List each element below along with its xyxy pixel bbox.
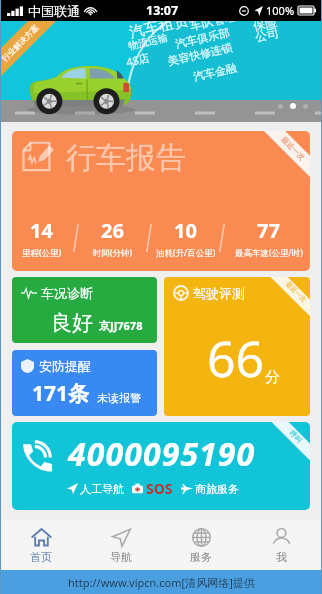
staticText: 油耗(升/百公里) — [156, 247, 216, 259]
staticText: 汽车俱乐部 — [174, 25, 231, 51]
button[interactable]: 二手车 — [1, 21, 321, 122]
staticText: 分 — [265, 368, 280, 387]
staticText: 汽车金融 — [192, 60, 238, 84]
staticText: 我 — [276, 550, 287, 564]
staticText: 100% — [266, 3, 295, 18]
staticText: 未读报警 — [97, 391, 141, 405]
button[interactable]: 呼叫 — [12, 422, 310, 510]
staticText: 服务 — [190, 550, 212, 564]
button[interactable]: 最近一次 — [164, 277, 310, 416]
staticText: 导航 — [110, 550, 132, 564]
staticText: 保险 — [252, 21, 278, 33]
staticText: 车况诊断 — [41, 285, 93, 301]
staticText: 良好 — [51, 310, 93, 336]
staticText: 171条 — [32, 379, 90, 408]
staticText: 26 — [101, 217, 124, 244]
staticText: 驾驶评测 — [193, 285, 245, 301]
staticText: 安防提醒 — [39, 358, 91, 374]
staticText: 呼叫 — [288, 428, 304, 445]
staticText: 10 — [174, 217, 197, 244]
staticText: 商旅服务 — [195, 482, 239, 496]
button[interactable]: 我 — [241, 520, 321, 570]
staticText: 最高车速(公里/时) — [235, 247, 303, 259]
button[interactable]: 首页 — [1, 520, 81, 570]
staticText: 汽车租赁 — [128, 21, 190, 42]
staticText: 13:07 — [146, 2, 179, 19]
staticText: 京JJ7678 — [99, 318, 143, 333]
staticText: 里程(公里) — [22, 247, 62, 259]
button[interactable]: 安防提醒 — [12, 350, 157, 416]
staticText: 物流运输 — [127, 31, 169, 52]
staticText: http://www.vipcn.com[清风网络]提供 — [68, 575, 255, 590]
staticText: 中国联通 — [28, 3, 80, 19]
staticText: 美容快修连锁 — [166, 40, 234, 68]
staticText: 最近一次 — [279, 135, 307, 162]
staticText: 车队管理 — [188, 21, 238, 33]
staticText: 4000095190 — [68, 432, 256, 476]
button[interactable]: 导航 — [81, 520, 161, 570]
staticText: 最近一次 — [284, 280, 308, 304]
button[interactable]: 最近一次 — [12, 131, 310, 271]
staticText: 行业解决方案 — [1, 22, 40, 63]
staticText: 4S店 — [125, 49, 151, 69]
button[interactable]: 车况诊断 — [12, 277, 157, 343]
staticText: 二手车 — [136, 21, 165, 23]
staticText: SOS — [146, 479, 173, 498]
staticText: 66 — [207, 324, 265, 392]
staticText: 行车报告 — [66, 139, 186, 177]
staticText: 首页 — [30, 550, 52, 564]
staticText: 时间(分钟) — [93, 247, 133, 259]
staticText: 14 — [30, 217, 53, 244]
staticText: 77 — [257, 217, 280, 244]
staticText: 人工导航 — [80, 482, 124, 496]
button[interactable]: 服务 — [161, 520, 241, 570]
staticText: 公司 — [254, 24, 280, 44]
